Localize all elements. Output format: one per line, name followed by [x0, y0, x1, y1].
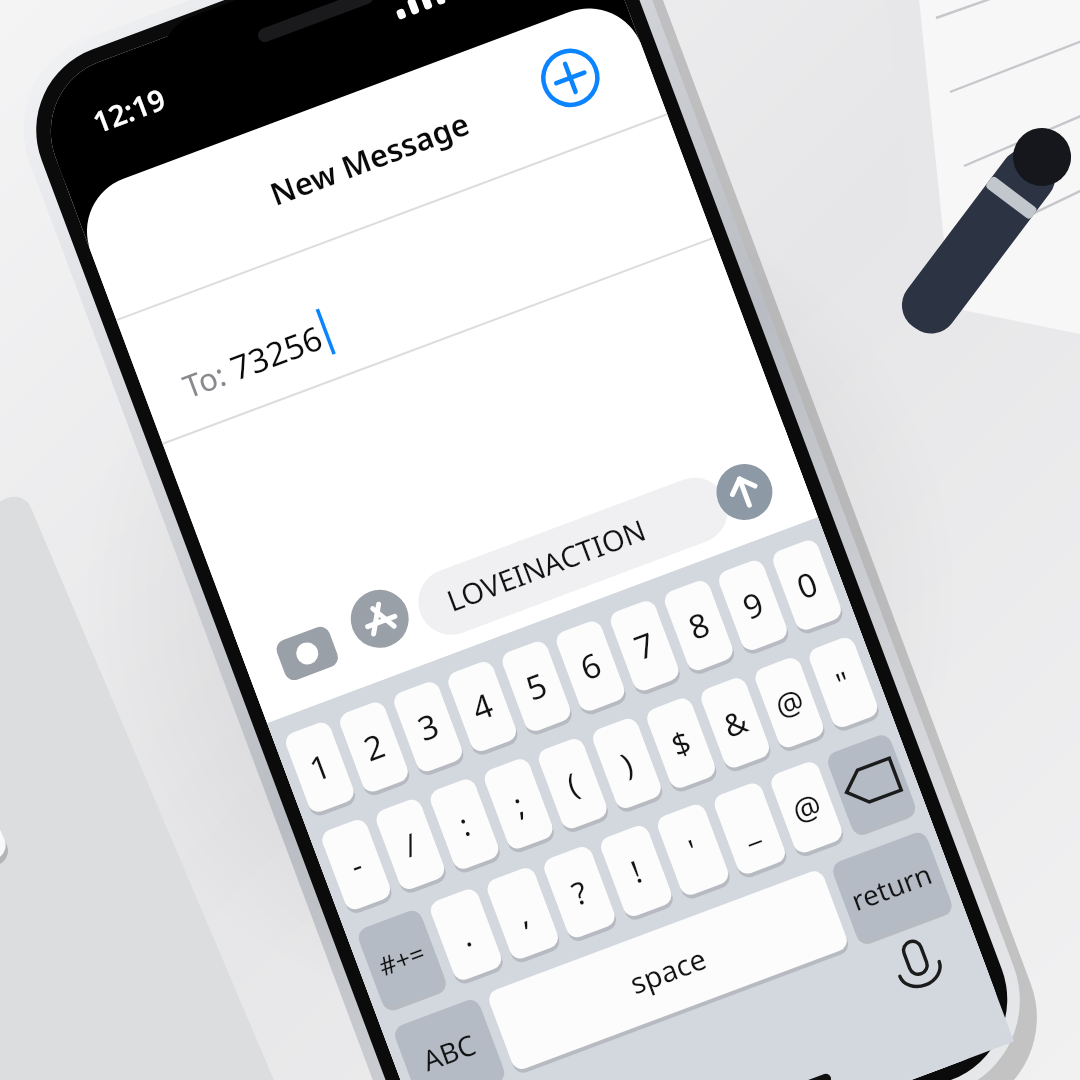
button[interactable]: New Message composer on iPhone — [0, 0, 1080, 1080]
